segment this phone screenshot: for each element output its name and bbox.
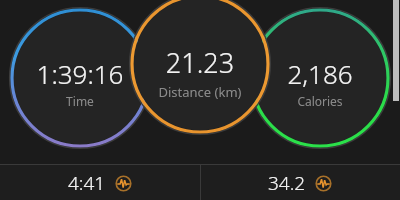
button[interactable]: Time 1:39:16 <box>12 14 148 150</box>
button[interactable]: Average speed 34.2 <box>200 165 400 200</box>
staticText: 2,186 <box>252 56 388 91</box>
staticText: 1:39:16 <box>12 56 148 91</box>
staticText: 4:41 <box>68 170 106 196</box>
staticText: Time <box>12 93 148 109</box>
staticText: Distance (km) <box>132 83 268 101</box>
staticText: 21.23 <box>132 44 268 81</box>
button[interactable]: Distance 21.23 km <box>132 4 268 140</box>
staticText: Calories <box>252 93 388 109</box>
button[interactable]: Average pace 4:41 <box>0 165 200 200</box>
button[interactable]: Calories 2,186 <box>252 14 388 150</box>
staticText: 34.2 <box>268 170 306 196</box>
